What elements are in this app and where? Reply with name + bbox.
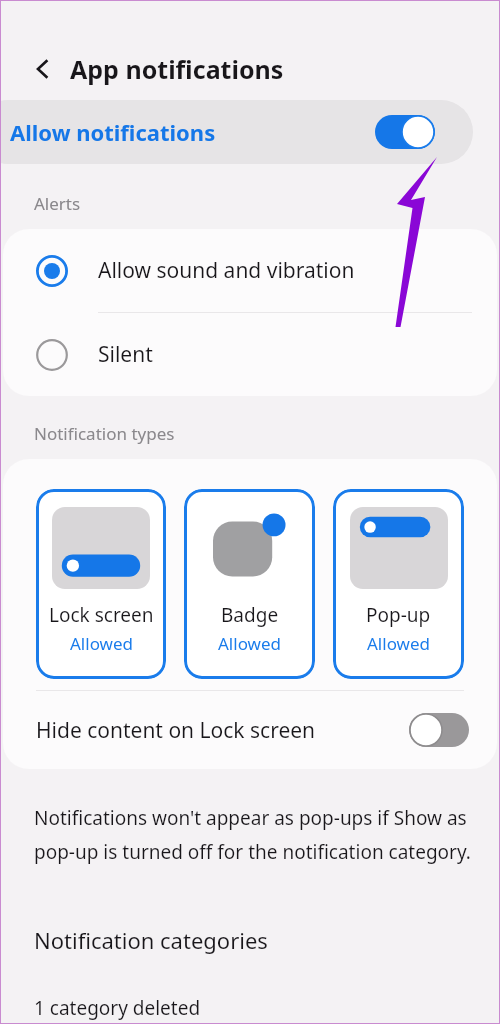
staticText: Notification categories — [34, 925, 268, 955]
staticText: Hide content on Lock screen — [36, 716, 316, 745]
button[interactable]: Pop-up — [333, 489, 464, 679]
button[interactable]: Allow sound and vibration — [3, 229, 497, 312]
staticText: Allowed — [367, 632, 430, 655]
staticText: Allowed — [70, 632, 133, 655]
button[interactable]: Hide content on Lock screen — [3, 691, 497, 769]
button[interactable]: Hide content on Lock screen toggle, off — [409, 713, 469, 747]
staticText: Alerts — [34, 192, 81, 215]
button[interactable]: Lock screen — [36, 489, 166, 679]
staticText: Notifications won't appear as pop-ups if… — [34, 805, 467, 831]
button[interactable]: Allow notifications toggle, on — [375, 115, 435, 149]
staticText: App notifications — [70, 52, 284, 86]
staticText: pop-up is turned off for the notificatio… — [34, 839, 471, 865]
button[interactable]: Back — [26, 52, 60, 86]
staticText: Pop-up — [366, 602, 431, 628]
button[interactable]: Notification categories — [0, 913, 500, 967]
staticText: Allow notifications — [10, 117, 216, 147]
staticText: Allow sound and vibration — [98, 256, 355, 285]
button[interactable]: Badge — [184, 489, 315, 679]
staticText: Silent — [98, 340, 153, 369]
staticText: Badge — [221, 602, 279, 628]
staticText: 1 category deleted — [34, 995, 201, 1021]
staticText: Lock screen — [49, 602, 154, 628]
staticText: Notification types — [34, 422, 175, 445]
staticText: Allowed — [218, 632, 281, 655]
button[interactable]: Silent — [3, 313, 497, 396]
button[interactable]: Allow notifications — [0, 100, 473, 164]
